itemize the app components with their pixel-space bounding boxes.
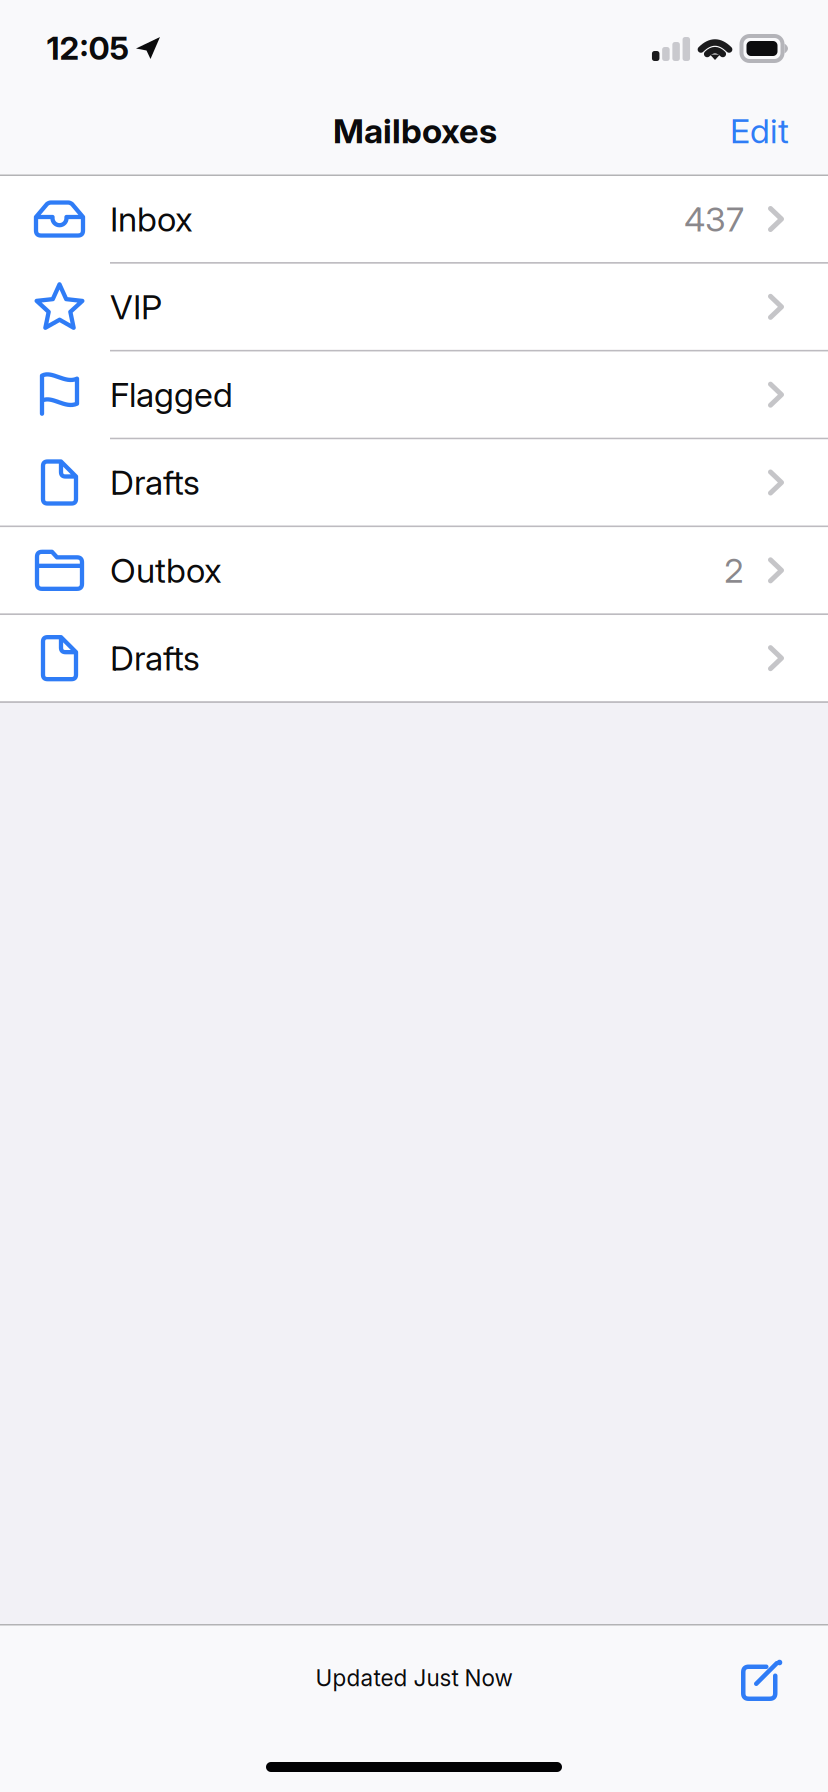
staticText: Drafts xyxy=(110,638,200,679)
staticText: Drafts xyxy=(110,462,200,503)
staticText: Mailboxes xyxy=(333,110,497,151)
staticText: Outbox xyxy=(110,550,222,591)
button[interactable]: Compose xyxy=(729,1649,793,1713)
staticText: 12:05 xyxy=(46,29,129,67)
staticText: 2 xyxy=(724,550,744,591)
staticText: Inbox xyxy=(110,198,193,239)
staticText: Edit xyxy=(730,110,789,151)
button[interactable]: Edit xyxy=(716,96,803,165)
staticText: Updated Just Now xyxy=(315,1664,512,1692)
staticText: 437 xyxy=(684,198,744,239)
staticText: VIP xyxy=(110,286,162,327)
button[interactable]: Flagged xyxy=(0,352,828,439)
button[interactable]: Drafts xyxy=(0,615,828,703)
button[interactable]: Inbox xyxy=(0,176,828,264)
button[interactable]: Outbox xyxy=(0,527,828,615)
button[interactable]: VIP xyxy=(0,264,828,352)
button[interactable]: Drafts xyxy=(0,439,828,527)
staticText: Flagged xyxy=(110,374,233,415)
